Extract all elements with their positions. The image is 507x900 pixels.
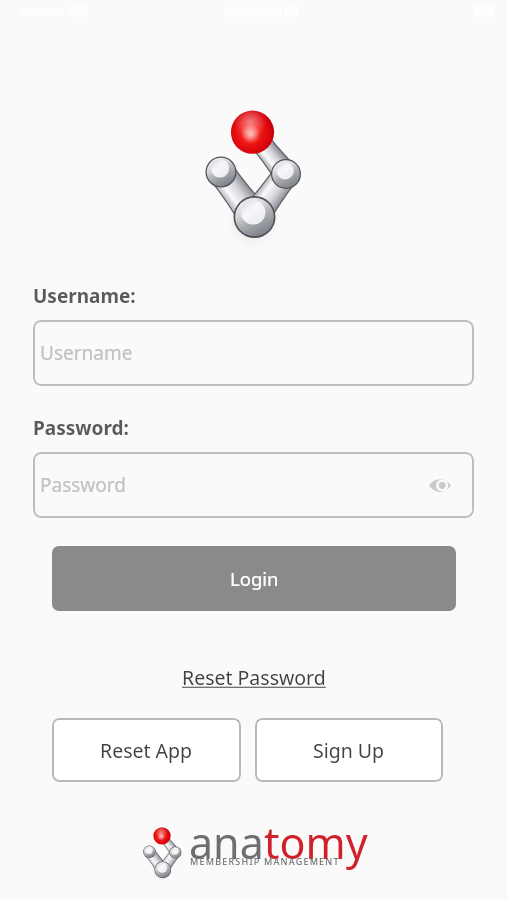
staticText: MEMBERSHIP MANAGEMENT [190,855,340,867]
button[interactable]: Reset Password [178,662,330,693]
staticText: Username [40,340,133,366]
staticText: Login [230,566,279,591]
button[interactable]: Username [33,320,474,386]
button[interactable]: Password [33,452,474,518]
button[interactable]: Sign Up [255,718,443,782]
button[interactable]: Login [52,546,456,611]
staticText: ana [189,813,264,872]
staticText: Username: [33,283,136,309]
staticText: Password: [33,415,129,441]
button[interactable]: Reset App [52,718,241,782]
staticText: Reset App [100,737,193,764]
staticText: tomy [264,813,368,872]
staticText: Sign Up [313,737,385,764]
staticText: Password [40,472,126,498]
other: Show password [429,477,451,494]
